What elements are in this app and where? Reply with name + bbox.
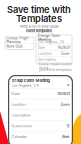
staticText: Los Angeles, CA (11, 83, 38, 88)
staticText: Templates (16, 13, 62, 24)
staticText: your filled templates (39, 68, 72, 72)
staticText: 10/28/21 (57, 91, 69, 96)
staticText: Calendar (11, 135, 26, 139)
staticText: event templates (26, 29, 52, 33)
staticText: Keep a list of your usual (19, 24, 58, 29)
staticText: 10/28/21 (58, 46, 70, 49)
staticText: Guest count (11, 124, 31, 128)
staticText: Description (38, 58, 56, 61)
staticText: Work (61, 135, 69, 139)
staticText: Easily create events using (39, 62, 72, 70)
staticText: Save time with (7, 4, 71, 15)
staticText: Lineup: Flight Planning (7, 36, 29, 44)
staticText: Design Team Meeting (38, 33, 60, 42)
staticText: Date (38, 46, 45, 49)
staticText: Rock Club (7, 44, 23, 48)
staticText: Description (11, 113, 30, 117)
staticText: Group Zoom Meeting (11, 78, 50, 83)
staticText: Date (11, 91, 19, 96)
staticText: Zoom (60, 102, 69, 107)
staticText: Location (38, 52, 52, 55)
staticText: 12 (66, 124, 69, 128)
staticText: Zoom (61, 52, 70, 55)
staticText: Los Angeles, CA (38, 40, 64, 44)
staticText: Location (11, 102, 25, 107)
